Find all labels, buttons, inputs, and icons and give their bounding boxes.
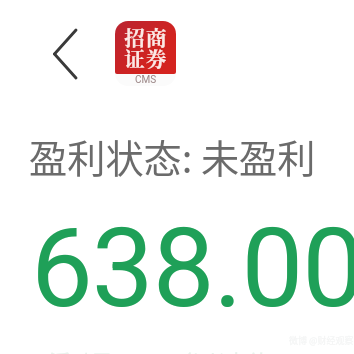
staticText: 招商 证券 bbox=[124, 22, 168, 73]
staticText: 盈利状态: 未盈利 bbox=[29, 129, 316, 184]
staticText: 微博 @财经观察 bbox=[289, 334, 354, 347]
staticText: CMS bbox=[115, 74, 176, 86]
button[interactable]: China Merchants Securities app icon bbox=[112, 18, 180, 88]
button[interactable]: Back bbox=[38, 20, 90, 88]
staticText: 638.00 bbox=[31, 204, 354, 333]
